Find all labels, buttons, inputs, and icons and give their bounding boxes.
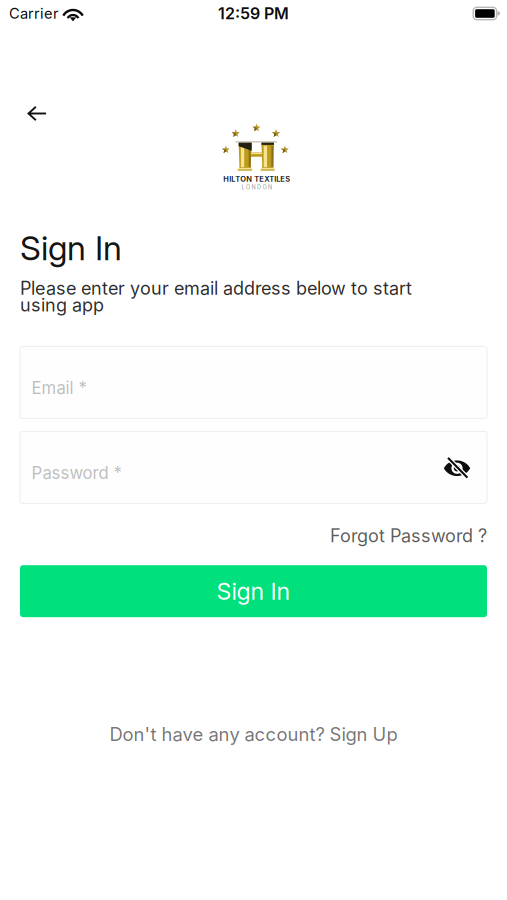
- staticText: Forgot Password ?: [330, 525, 487, 547]
- button[interactable]: Forgot Password ?: [330, 521, 487, 551]
- button[interactable]: Show password: [443, 447, 471, 487]
- button[interactable]: Sign In: [20, 565, 487, 617]
- staticText: HILTON TEXTILES: [223, 174, 290, 183]
- staticText: Sign In: [20, 228, 122, 268]
- staticText: 12:59 PM: [218, 4, 289, 23]
- button[interactable]: Back: [13, 91, 61, 135]
- staticText: Sign In: [216, 577, 290, 605]
- staticText: LONDON: [242, 184, 272, 191]
- staticText: Don't have any account? Sign Up: [109, 723, 397, 745]
- staticText: Email *: [31, 378, 86, 398]
- staticText: Please enter your email address below to…: [20, 277, 412, 316]
- button[interactable]: Don't have any account? Sign Up: [109, 719, 397, 749]
- staticText: Password *: [31, 463, 121, 483]
- staticText: Carrier: [9, 5, 59, 22]
